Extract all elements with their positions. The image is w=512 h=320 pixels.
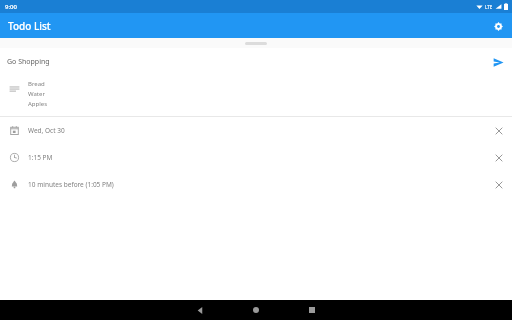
staticText: 10 minutes before (1:05 PM) bbox=[28, 180, 485, 189]
staticText: Go Shopping bbox=[7, 57, 484, 67]
staticText: 9:00 bbox=[5, 3, 17, 11]
staticText: Water bbox=[28, 90, 45, 98]
button[interactable]: Send bbox=[484, 48, 512, 76]
staticText: LTE bbox=[485, 4, 493, 10]
button[interactable]: 1:15 PM bbox=[0, 144, 512, 171]
button[interactable]: Settings bbox=[487, 15, 509, 37]
button[interactable]: Bread bbox=[0, 76, 512, 116]
button[interactable]: Back bbox=[180, 300, 220, 320]
button[interactable]: Remove bbox=[485, 144, 512, 171]
button[interactable]: Remove bbox=[485, 171, 512, 198]
staticText: Wed, Oct 30 bbox=[28, 126, 485, 135]
staticText: Apples bbox=[28, 100, 48, 108]
staticText: 1:15 PM bbox=[28, 153, 485, 162]
staticText: Bread bbox=[28, 80, 45, 88]
button[interactable]: 10 minutes before (1:05 PM) bbox=[0, 171, 512, 198]
button[interactable]: Home bbox=[236, 300, 276, 320]
staticText: Todo List bbox=[8, 19, 51, 33]
button[interactable]: Recent apps bbox=[292, 300, 332, 320]
button[interactable]: Wed, Oct 30 bbox=[0, 117, 512, 144]
button[interactable]: Remove bbox=[485, 117, 512, 144]
